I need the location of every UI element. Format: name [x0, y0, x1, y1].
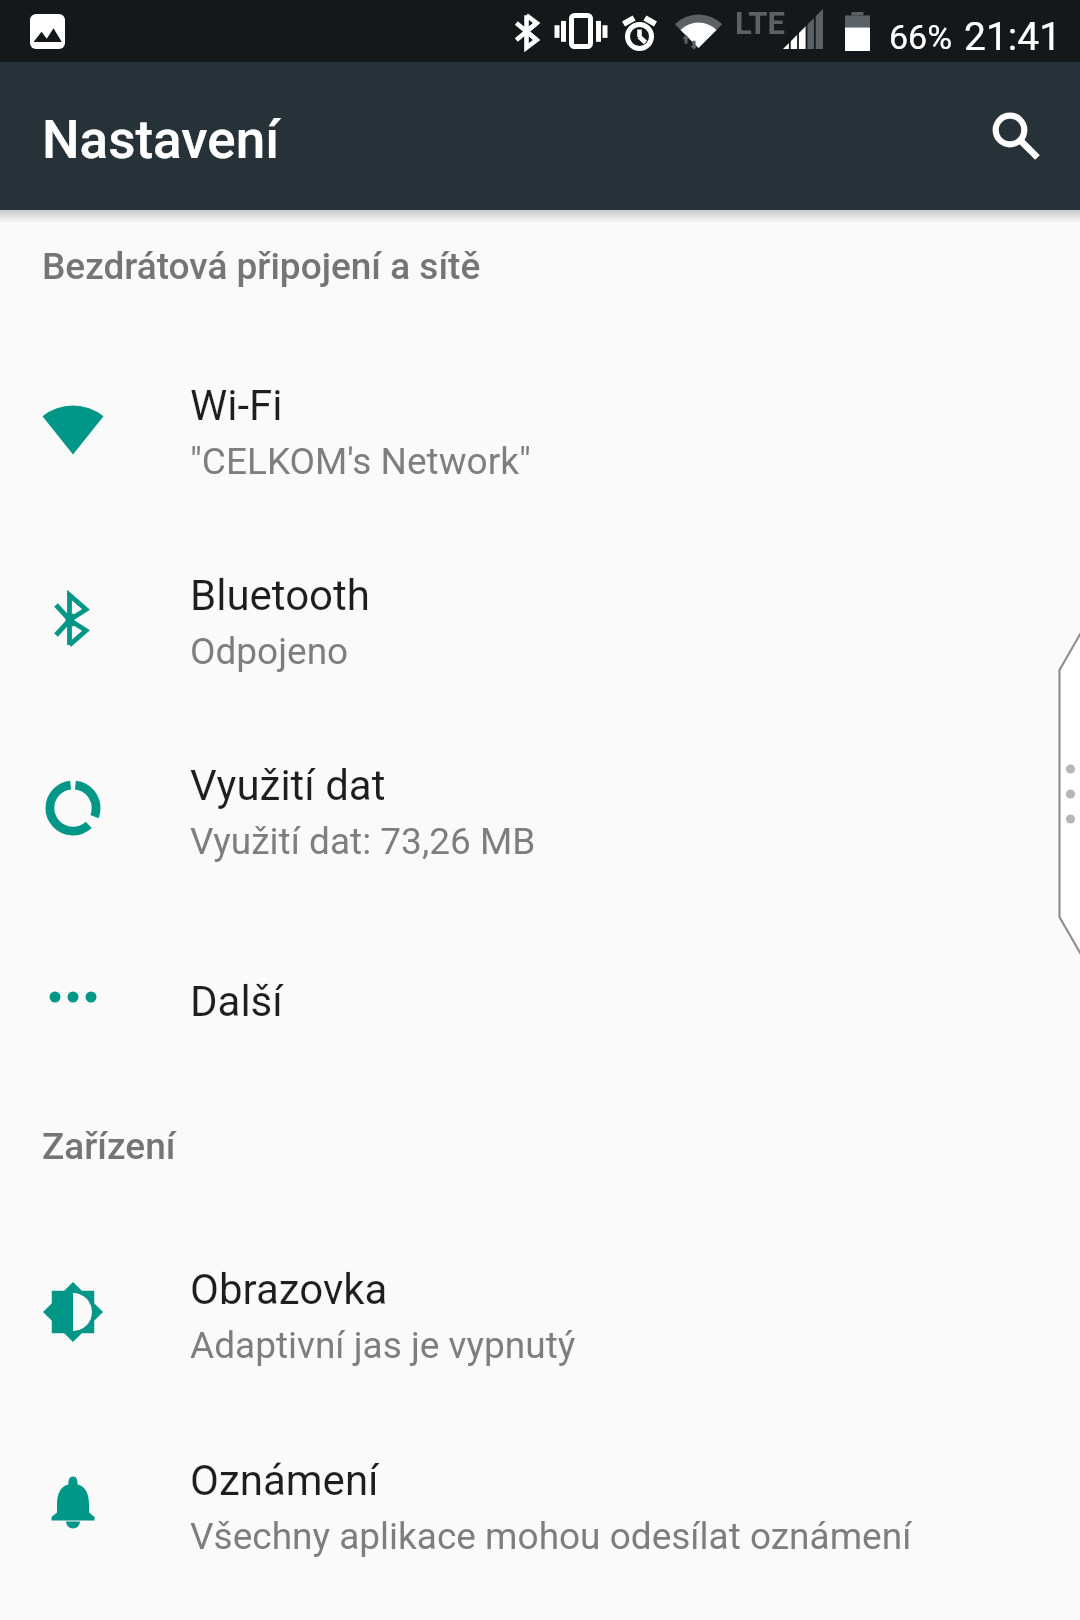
button[interactable]: Bluetooth: [0, 508, 1080, 686]
staticText: Využití dat: [190, 761, 386, 810]
staticText: Využití dat: 73,26 MB: [190, 820, 536, 863]
button[interactable]: Oznámení: [0, 1393, 1080, 1571]
button[interactable]: Wi-Fi: [0, 318, 1080, 496]
staticText: 21:41: [964, 14, 1062, 60]
button[interactable]: Obrazovka: [0, 1202, 1080, 1380]
staticText: Adaptivní jas je vypnutý: [190, 1324, 576, 1367]
button[interactable]: Search: [972, 63, 1056, 147]
staticText: LTE: [735, 5, 785, 41]
staticText: Další: [190, 977, 283, 1026]
button[interactable]: Využití dat: [0, 698, 1080, 876]
staticText: Zařízení: [42, 1125, 176, 1168]
staticText: Obrazovka: [190, 1265, 388, 1314]
staticText: Oznámení: [190, 1456, 379, 1505]
staticText: Bluetooth: [190, 571, 370, 620]
staticText: "CELKOM's Network": [190, 440, 531, 483]
staticText: Nastavení: [42, 109, 279, 171]
staticText: Wi-Fi: [190, 381, 283, 430]
staticText: 66%: [889, 17, 953, 57]
staticText: Odpojeno: [190, 630, 349, 673]
staticText: Bezdrátová připojení a sítě: [42, 245, 481, 288]
button[interactable]: Edge panel handle: [1059, 624, 1080, 964]
button[interactable]: Další: [0, 914, 1080, 1054]
staticText: Všechny aplikace mohou odesílat oznámení: [190, 1515, 912, 1558]
